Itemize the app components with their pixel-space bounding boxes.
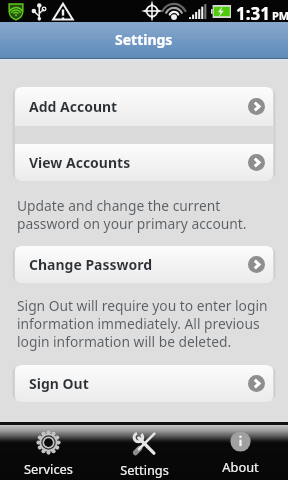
staticText: Add Account: [29, 97, 118, 116]
button[interactable]: View Accounts: [15, 144, 273, 181]
button[interactable]: Settings: [96, 425, 192, 480]
button[interactable]: About: [192, 425, 288, 480]
button[interactable]: Change Password: [15, 246, 273, 283]
staticText: Update and change the current password o…: [17, 196, 282, 233]
staticText: Sign Out will require you to enter login…: [17, 296, 282, 351]
staticText: About: [222, 458, 259, 475]
staticText: Services: [24, 460, 73, 477]
staticText: Change Password: [29, 255, 153, 274]
staticText: PM: [272, 8, 288, 23]
staticText: View Accounts: [29, 153, 131, 172]
staticText: Settings: [115, 30, 173, 49]
button[interactable]: Sign Out: [15, 365, 273, 402]
staticText: Sign Out: [29, 374, 89, 393]
button[interactable]: Add Account: [15, 87, 273, 126]
staticText: Settings: [120, 461, 169, 478]
staticText: 1:31: [236, 2, 270, 24]
button[interactable]: Services: [0, 425, 96, 480]
